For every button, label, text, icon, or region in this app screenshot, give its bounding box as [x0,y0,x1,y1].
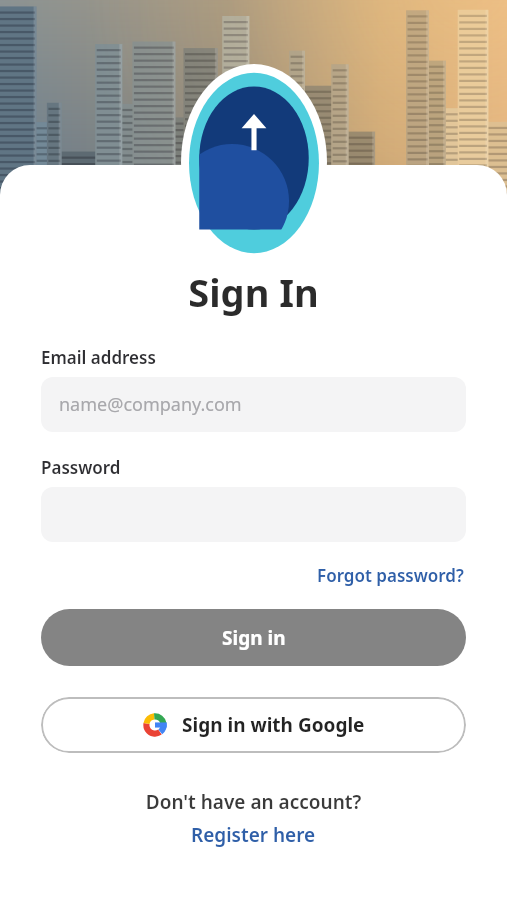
staticText: Register here [191,822,316,848]
button[interactable]: name@company.com [41,377,466,432]
staticText: name@company.com [59,392,242,417]
staticText: Don't have an account? [41,789,466,815]
staticText: Forgot password? [317,564,464,587]
staticText: Email address [41,346,156,369]
button[interactable]: Sign in with Google [41,697,466,753]
button[interactable]: Forgot password? [315,562,466,589]
staticText: Sign in [222,625,286,651]
staticText: Password [41,456,121,479]
staticText: Sign in with Google [182,712,365,738]
staticText: Sign In [41,266,466,318]
button[interactable]: Sign in [41,609,466,666]
button[interactable]: Register here [187,821,320,849]
